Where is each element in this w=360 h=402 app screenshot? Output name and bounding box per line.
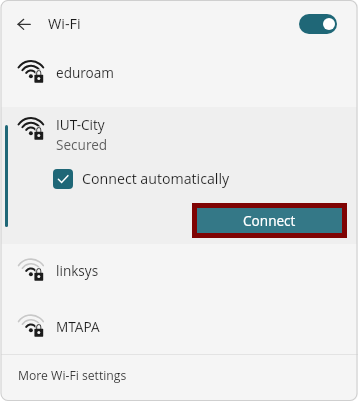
button[interactable]	[1, 300, 358, 354]
staticText: MTAPA	[56, 317, 100, 336]
staticText: Connect automatically	[82, 169, 230, 188]
button[interactable]: Connect	[197, 208, 342, 233]
staticText: linksys	[56, 261, 99, 280]
staticText: Connect	[243, 211, 296, 230]
staticText: eduroam	[56, 63, 114, 82]
staticText: Secured	[56, 135, 108, 154]
button[interactable]	[1, 48, 358, 103]
button[interactable]	[1, 107, 358, 159]
button[interactable]: Connect automatically	[53, 166, 233, 192]
staticText: More Wi-Fi settings	[18, 367, 127, 384]
button[interactable]: More Wi-Fi settings	[1, 355, 358, 400]
button[interactable]: Wi-Fi on	[299, 14, 337, 34]
button[interactable]	[1, 246, 358, 300]
button[interactable]: Back	[9, 8, 41, 40]
staticText: IUT-City	[56, 115, 105, 134]
staticText: Wi-Fi	[48, 14, 81, 34]
